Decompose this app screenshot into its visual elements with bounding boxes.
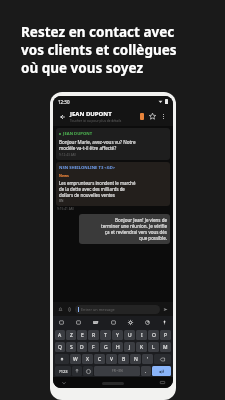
staticText: J	[129, 344, 131, 351]
button[interactable]: Favorite	[147, 111, 158, 122]
staticText: BN	[59, 199, 64, 203]
button[interactable]: R	[88, 330, 99, 340]
button[interactable]: Emoji settings	[72, 366, 82, 376]
button[interactable]: Z	[66, 330, 76, 340]
button[interactable]: ?123	[55, 366, 71, 376]
staticText: D	[80, 344, 84, 351]
button[interactable]: C	[94, 354, 105, 364]
button[interactable]: W	[70, 354, 81, 364]
staticText: T	[104, 332, 107, 339]
button[interactable]: JEAN DUPONT	[56, 128, 170, 160]
button[interactable]: S	[66, 342, 76, 352]
staticText: P	[164, 332, 168, 339]
staticText: '	[147, 356, 149, 363]
button[interactable]: GIF	[90, 317, 101, 328]
button[interactable]: T	[100, 330, 111, 340]
button[interactable]: N	[130, 354, 141, 364]
button[interactable]: F	[88, 342, 99, 352]
staticText: Toucher ici ou pour plus de détails	[70, 119, 122, 123]
button[interactable]: I	[136, 330, 147, 340]
staticText: Y	[116, 332, 119, 339]
button[interactable]: Settings	[125, 317, 136, 328]
staticText: 9:12:43 AM	[59, 153, 76, 157]
staticText: M	[163, 344, 168, 351]
staticText: V	[110, 356, 114, 363]
button[interactable]: A	[55, 330, 65, 340]
button[interactable]: L	[148, 342, 159, 352]
button[interactable]: H	[112, 342, 123, 352]
button[interactable]: Sticker	[73, 317, 84, 328]
button[interactable]: E	[77, 330, 87, 340]
button[interactable]: Clipboard	[56, 317, 67, 328]
staticText: C	[98, 356, 102, 363]
button[interactable]: M	[160, 342, 171, 352]
staticText: X	[86, 356, 89, 363]
button[interactable]: Theme	[142, 317, 153, 328]
button[interactable]: Attach file	[65, 305, 74, 314]
button[interactable]: JEAN DUPONT	[70, 110, 136, 123]
button[interactable]: Y	[112, 330, 123, 340]
staticText: K	[140, 344, 144, 351]
button[interactable]: Emoji	[83, 366, 93, 376]
button[interactable]: O	[148, 330, 159, 340]
button[interactable]: K	[136, 342, 147, 352]
staticText: Les emprunteurs inondent le marché de la…	[59, 180, 136, 198]
staticText: B	[122, 356, 126, 363]
button[interactable]: Shift	[55, 354, 69, 364]
button[interactable]: Send	[161, 305, 170, 314]
staticText: Restez en contact avec vos clients et co…	[21, 23, 177, 77]
staticText: FR • EN	[112, 369, 123, 373]
staticText: JEAN DUPONT	[70, 110, 112, 118]
staticText: O	[152, 332, 156, 339]
staticText: G	[104, 344, 108, 351]
button[interactable]: P	[160, 330, 171, 340]
staticText: F	[92, 344, 95, 351]
button[interactable]: B	[118, 354, 129, 364]
button[interactable]: Contact card	[136, 111, 147, 122]
button[interactable]: Notifications	[56, 305, 65, 314]
staticText: Bonjour Jean! Je viens de terminer une r…	[82, 217, 167, 241]
button[interactable]: Entrer un message	[75, 305, 160, 314]
button[interactable]: .	[141, 366, 151, 376]
button[interactable]: V	[106, 354, 117, 364]
staticText: I	[141, 332, 143, 339]
button[interactable]: Back	[57, 111, 68, 122]
staticText: E	[81, 332, 84, 339]
staticText: U	[128, 332, 132, 339]
button[interactable]: Enter	[152, 366, 171, 376]
staticText: W	[73, 356, 78, 363]
button[interactable]: D	[77, 342, 87, 352]
staticText: A	[58, 332, 62, 339]
button[interactable]: Backspace	[154, 354, 171, 364]
staticText: JEAN DUPONT	[63, 131, 93, 137]
staticText: 12:30	[58, 99, 70, 105]
staticText: ?123	[59, 369, 68, 374]
staticText: Z	[70, 332, 73, 339]
button[interactable]: More options	[158, 111, 169, 122]
staticText: S	[70, 344, 73, 351]
button[interactable]: Voice input	[159, 317, 170, 328]
button[interactable]: Switch keyboard	[158, 378, 167, 387]
button[interactable]: Bonjour Jean! Je viens de terminer une r…	[79, 214, 170, 244]
staticText: L	[152, 344, 155, 351]
staticText: Q	[58, 344, 62, 351]
staticText: News	[59, 173, 69, 178]
button[interactable]: U	[124, 330, 135, 340]
staticText: H	[116, 344, 120, 351]
button[interactable]: Q	[55, 342, 65, 352]
button[interactable]: FR • EN	[94, 366, 140, 376]
button[interactable]: Translate	[108, 317, 119, 328]
staticText: .	[145, 368, 147, 375]
staticText: GIF	[93, 321, 99, 325]
button[interactable]: Hide keyboard	[59, 378, 68, 387]
button[interactable]: X	[82, 354, 93, 364]
staticText: R	[92, 332, 96, 339]
button[interactable]: J	[124, 342, 135, 352]
staticText: Entrer un message	[81, 307, 115, 312]
button[interactable]: G	[100, 342, 111, 352]
button[interactable]: '	[142, 354, 153, 364]
staticText: 9:15:41 AM	[57, 207, 74, 211]
staticText: NSN SHEILONLINE T3 <GD>	[59, 165, 116, 171]
staticText: Bonjour Marie, avez-vous vu? Notre modèl…	[59, 139, 136, 151]
button[interactable]: NSN SHEILONLINE T3 <GD>	[56, 162, 170, 206]
